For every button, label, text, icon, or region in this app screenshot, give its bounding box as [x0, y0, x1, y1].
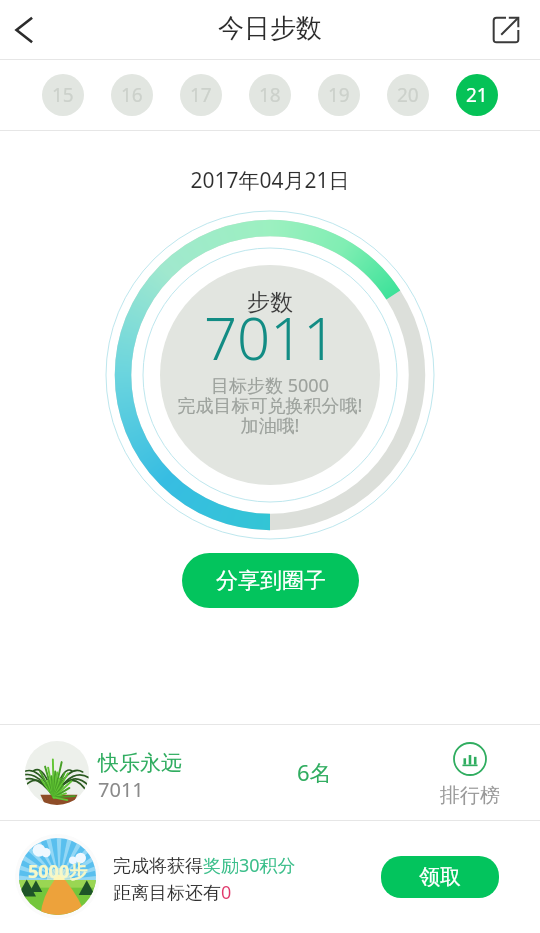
button[interactable]: 领取: [381, 856, 499, 898]
staticText: 领取: [419, 864, 461, 890]
button[interactable]: 快乐永远: [0, 725, 540, 820]
button[interactable]: 15: [42, 74, 84, 116]
button[interactable]: 19: [318, 74, 360, 116]
staticText: 18: [259, 82, 281, 108]
staticText: 快乐永远: [98, 750, 182, 776]
button[interactable]: 20: [387, 74, 429, 116]
staticText: 距离目标还有0: [113, 880, 232, 905]
staticText: 6名: [297, 757, 332, 787]
staticText: 完成将获得奖励30积分: [113, 853, 296, 878]
button[interactable]: 17: [180, 74, 222, 116]
button[interactable]: 16: [111, 74, 153, 116]
staticText: 目标步数 5000 完成目标可兑换积分哦! 加油哦!: [0, 373, 540, 437]
staticText: 21: [466, 82, 488, 108]
staticText: 20: [397, 82, 419, 108]
staticText: 7011: [98, 776, 144, 803]
button[interactable]: 21: [456, 74, 498, 116]
staticText: 分享到圈子: [216, 567, 326, 595]
staticText: 17: [190, 82, 212, 108]
button[interactable]: Back: [0, 0, 54, 59]
staticText: 16: [121, 82, 143, 108]
staticText: 2017年04月21日: [0, 166, 540, 195]
staticText: 排行榜: [440, 783, 500, 808]
staticText: 步数: [247, 288, 293, 317]
staticText: 19: [328, 82, 350, 108]
button[interactable]: 18: [249, 74, 291, 116]
staticText: 5000步: [28, 859, 88, 884]
button[interactable]: Share: [480, 0, 540, 59]
button[interactable]: 分享到圈子: [182, 553, 359, 608]
staticText: 7011: [204, 298, 337, 377]
staticText: 15: [52, 82, 74, 108]
staticText: 今日步数: [218, 12, 322, 45]
